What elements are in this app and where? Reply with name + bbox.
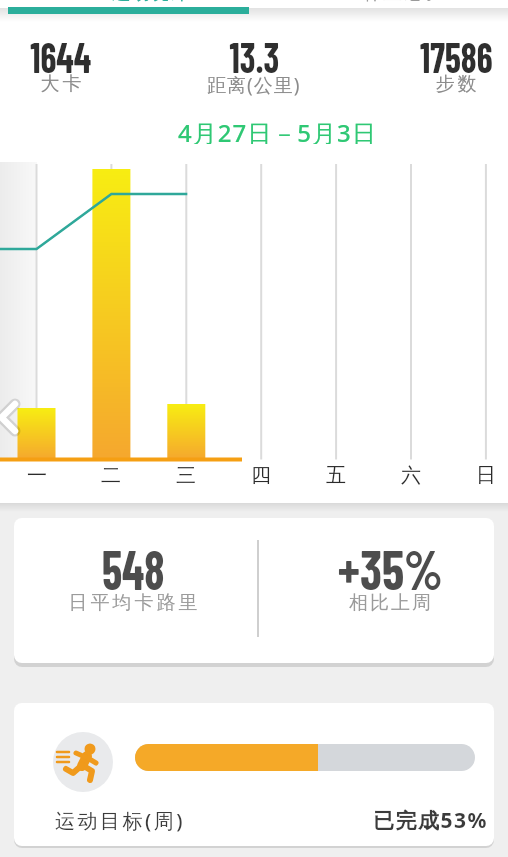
staticText: 四: [251, 463, 271, 487]
staticText: 五: [326, 463, 346, 487]
staticText: 二: [101, 463, 121, 487]
staticText: 日平均卡路里: [67, 591, 199, 615]
staticText: 三: [176, 463, 196, 487]
staticText: 运动目标(周): [55, 807, 185, 834]
staticText: 1644: [30, 32, 92, 81]
staticText: 17586: [420, 32, 493, 81]
staticText: 相比上周: [348, 591, 432, 615]
staticText: 运动统计: [112, 0, 188, 5]
staticText: 一: [27, 463, 47, 487]
staticText: 步数: [434, 72, 478, 96]
staticText: 六: [401, 463, 421, 487]
staticText: 548: [102, 534, 165, 601]
staticText: 4月27日－5月3日: [178, 116, 377, 144]
staticText: +35%: [338, 534, 443, 601]
staticText: 已完成53%: [373, 806, 488, 835]
staticText: 大卡: [39, 72, 83, 96]
staticText: 13.3: [229, 32, 280, 81]
staticText: 距离(公里): [207, 72, 301, 96]
staticText: 日: [476, 463, 496, 487]
staticText: 体重记录: [364, 0, 440, 5]
